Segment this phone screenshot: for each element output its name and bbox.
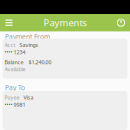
staticText: Pay To (5, 83, 25, 92)
staticText: •••• 9981 (4, 101, 25, 108)
staticText: Payment From (5, 32, 50, 41)
button[interactable]: Log out (114, 16, 128, 30)
staticText: Available (4, 66, 25, 73)
staticText: Payments (43, 16, 86, 29)
staticText: •••• 1234 (4, 49, 25, 56)
staticText: Visa (23, 94, 33, 101)
staticText: Payee (4, 94, 19, 101)
button[interactable]: Menu (2, 16, 16, 30)
staticText: Savings (19, 41, 38, 49)
staticText: $1,240.00 (28, 59, 51, 66)
staticText: Balance (4, 59, 23, 66)
staticText: Acct (4, 41, 15, 49)
